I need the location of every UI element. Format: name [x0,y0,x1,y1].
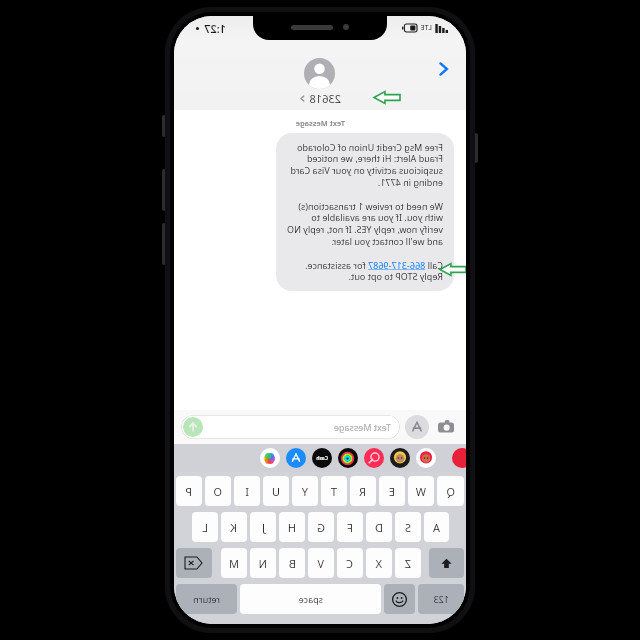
staticText: LTE [420,23,432,33]
button[interactable]: Memoji [390,448,410,468]
staticText: B [288,556,296,571]
button[interactable]: Z [395,548,421,578]
staticText: J [261,520,265,535]
button[interactable]: D [366,512,392,542]
staticText: I [245,484,249,499]
button[interactable]: V [308,548,334,578]
staticText: Text Message [333,421,391,433]
staticText: U [271,484,280,499]
button[interactable]: Apple Cash [312,448,332,468]
staticText: C [346,556,353,571]
button[interactable]: F [337,512,363,542]
button[interactable]: Fitness [338,448,358,468]
staticText: Free Msg Credit Union of Colorado Fraud … [287,141,443,189]
button[interactable]: W [408,476,434,506]
button[interactable]: G [308,512,334,542]
button[interactable]: A [424,512,449,542]
staticText: Call 866-317-9687 for assistance. Reply … [287,259,443,283]
staticText: L [202,520,208,535]
button[interactable]: space [240,584,381,614]
button[interactable]: S [395,512,421,542]
staticText: F [347,520,353,535]
staticText: O [213,484,222,499]
staticText: Cash [316,455,328,462]
staticText: D [374,520,383,535]
staticText: We need to review 1 transaction(s) with … [287,200,443,248]
button[interactable]: 23618 [299,58,341,106]
button[interactable]: Apps [405,415,429,439]
button[interactable]: 123 [418,584,464,614]
button[interactable]: Free Msg Credit Union of Colorado Fraud … [276,133,454,291]
button[interactable]: return [176,584,237,614]
button[interactable]: L [192,512,218,542]
button[interactable]: B [279,548,305,578]
staticText: S [404,520,411,535]
staticText: Z [404,556,411,571]
button[interactable]: O [205,476,231,506]
button[interactable]: App Store [286,448,306,468]
staticText: 1:27 [204,21,226,36]
staticText: return [193,593,220,605]
button[interactable]: M [221,548,247,578]
staticText: 123 [433,593,449,605]
button[interactable]: H [279,512,305,542]
staticText: Text Message [295,118,345,128]
staticText: X [375,556,382,571]
button[interactable]: E [379,476,405,506]
staticText: Y [301,484,308,499]
button[interactable]: Memoji [416,448,436,468]
staticText: T [330,484,337,499]
staticText: N [258,556,267,571]
staticText: P [185,484,192,499]
staticText: M [229,556,239,571]
button[interactable]: Emoji [384,584,415,614]
staticText: H [287,520,296,535]
staticText: K [230,520,237,535]
button[interactable]: Q [437,476,464,506]
button[interactable]: Photos [260,448,280,468]
button[interactable]: App [452,448,466,468]
staticText: R [359,484,366,499]
staticText: V [317,556,324,571]
button[interactable]: J [250,512,276,542]
button[interactable]: Send [183,417,203,437]
staticText: W [415,484,426,499]
button[interactable]: U [263,476,289,506]
staticText: space [298,593,323,605]
staticText: Q [446,484,455,499]
button[interactable]: Back [428,54,458,84]
button[interactable]: T [321,476,347,506]
button[interactable]: R [350,476,376,506]
button[interactable]: Delete [176,548,212,578]
button[interactable]: X [366,548,392,578]
staticText: E [388,484,395,499]
button[interactable]: Camera [433,414,459,440]
button[interactable]: P [176,476,202,506]
button[interactable]: N [250,548,276,578]
staticText: A [432,520,440,535]
button[interactable]: Text Message [181,415,400,439]
staticText: 23618 [309,91,341,106]
button[interactable]: Digital Touch [364,448,384,468]
button[interactable]: Y [292,476,318,506]
button[interactable]: Shift [429,548,464,578]
button[interactable]: K [221,512,247,542]
button[interactable]: I [234,476,260,506]
button[interactable]: C [337,548,363,578]
staticText: G [316,520,325,535]
